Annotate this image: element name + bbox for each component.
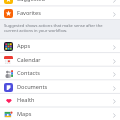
other: Open — [113, 59, 116, 64]
button[interactable]: Contacts — [0, 66, 120, 80]
staticText: Calendar — [17, 56, 113, 64]
staticText: Favorites — [17, 9, 113, 17]
button[interactable]: Maps — [0, 107, 120, 120]
other: Open — [113, 99, 116, 104]
staticText: Apps — [17, 42, 113, 50]
button[interactable]: Apps — [0, 39, 120, 53]
button[interactable]: Health — [0, 93, 120, 107]
button[interactable]: Suggested — [0, 0, 120, 6]
staticText: Maps — [17, 110, 113, 118]
other: Open — [113, 72, 116, 77]
staticText: Contacts — [17, 69, 113, 77]
staticText: Documents — [17, 83, 113, 91]
other: Open — [113, 113, 116, 118]
button[interactable]: Favorites — [0, 6, 120, 20]
staticText: Suggested shows actions that make sense … — [4, 23, 103, 29]
button[interactable]: Documents — [0, 80, 120, 94]
other: Open — [113, 45, 116, 50]
other: Open — [113, 12, 116, 17]
other: Open — [113, 86, 116, 91]
button[interactable]: Calendar — [0, 53, 120, 67]
staticText: Suggested — [17, 0, 113, 3]
other: Open — [113, 0, 116, 3]
staticText: Health — [17, 96, 113, 104]
staticText: current actions in your workflow. — [4, 28, 68, 34]
